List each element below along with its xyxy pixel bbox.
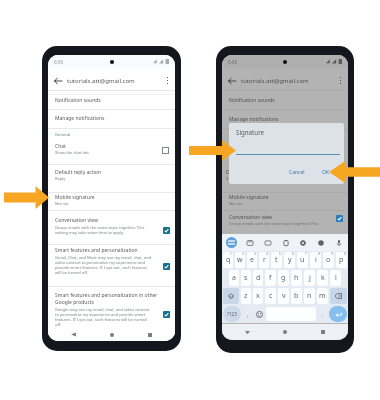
button[interactable]: h (291, 270, 302, 286)
button[interactable]: Default reply action (48, 169, 175, 186)
staticText: video content to personalize my experien… (55, 260, 145, 265)
staticText: u (300, 255, 305, 265)
button[interactable]: GIF (262, 237, 273, 248)
button[interactable]: ?123 (223, 306, 241, 322)
button[interactable]: Settings (297, 237, 308, 248)
button[interactable]: Smart features and personalization in ot… (48, 292, 175, 336)
staticText: s (244, 273, 248, 283)
button[interactable]: Comma (243, 305, 252, 323)
staticText: Smart features and personalization (55, 247, 138, 254)
button[interactable]: s (241, 270, 251, 286)
button[interactable]: Period (318, 305, 327, 323)
button[interactable]: Emoji (254, 305, 264, 323)
button[interactable]: 1 (223, 252, 233, 268)
button[interactable]: Recent apps (310, 324, 336, 340)
staticText: tutorials.att@gmail.com (241, 77, 309, 85)
button[interactable]: k (317, 270, 328, 286)
button[interactable]: x (253, 288, 263, 304)
button[interactable]: b (291, 288, 302, 304)
button[interactable]: l (330, 270, 341, 286)
staticText: 7 (305, 252, 307, 256)
button[interactable]: Back (234, 324, 260, 340)
button[interactable]: Enter (329, 306, 347, 322)
button[interactable]: f (265, 270, 276, 286)
staticText: Show the chat tab (55, 150, 89, 155)
staticText: Manage notifications (55, 115, 105, 122)
staticText: tutorials.att@gmail.com (67, 77, 135, 85)
button[interactable]: Stickers (244, 237, 255, 248)
button[interactable]: Voice input (333, 237, 344, 248)
button[interactable]: 4 (259, 252, 269, 268)
button[interactable]: j (304, 270, 315, 286)
button[interactable]: Navigate up (48, 68, 67, 93)
button[interactable]: Manage notifications (48, 109, 175, 127)
button[interactable]: Shift (223, 288, 239, 304)
button[interactable]: 2 (235, 252, 245, 268)
staticText: x (256, 291, 260, 301)
staticText: g (281, 273, 286, 283)
staticText: Smart features and personalization in ot… (55, 292, 158, 306)
button[interactable]: Clipboard (280, 237, 291, 248)
button[interactable]: 8 (310, 252, 321, 268)
button[interactable]: Backspace (330, 288, 347, 304)
staticText: Reply (226, 176, 237, 181)
button[interactable]: Conversation view (222, 214, 348, 231)
button[interactable]: Notification sounds (48, 91, 175, 109)
staticText: Mobile signature (229, 194, 269, 201)
button[interactable]: 0 (336, 252, 347, 268)
button[interactable]: c (265, 288, 276, 304)
button[interactable]: 7 (297, 252, 308, 268)
staticText: Notification sounds (229, 97, 275, 104)
staticText: w (237, 255, 243, 265)
button[interactable]: d (253, 270, 263, 286)
staticText: will be turned off. (55, 270, 88, 275)
button[interactable]: 6 (284, 252, 295, 268)
staticText: h (294, 273, 299, 283)
button[interactable]: 9 (323, 252, 334, 268)
staticText: t (275, 255, 278, 265)
staticText: e (250, 255, 254, 265)
button[interactable]: a (229, 270, 239, 286)
button[interactable]: Mobile signature (222, 194, 348, 211)
button[interactable]: Home (272, 324, 298, 340)
button[interactable]: Notification sounds (222, 91, 348, 109)
staticText: General (55, 132, 71, 138)
button[interactable]: Mobile signature (48, 194, 175, 211)
button[interactable]: Home (99, 328, 125, 341)
button[interactable]: Themes (315, 237, 326, 248)
button[interactable]: v (278, 288, 289, 304)
button[interactable]: Manage notifications (222, 110, 348, 128)
button[interactable]: m (317, 288, 328, 304)
button[interactable]: Chat (48, 142, 175, 162)
staticText: 6:36 (54, 59, 64, 65)
staticText: d (256, 273, 261, 283)
button[interactable]: More options (332, 68, 348, 93)
staticText: a (232, 273, 236, 283)
button[interactable]: 3 (247, 252, 257, 268)
button[interactable]: Smart features and personalization (48, 247, 175, 286)
staticText: Default reply action (55, 169, 101, 176)
button[interactable]: Conversation view (48, 217, 175, 244)
staticText: f (269, 273, 272, 283)
button[interactable]: Recent apps (137, 328, 163, 341)
button[interactable]: n (304, 288, 315, 304)
staticText: 6:36 (228, 59, 238, 65)
button[interactable]: OK (319, 167, 333, 178)
button[interactable]: Cancel (286, 167, 308, 178)
button[interactable]: Google search (226, 237, 237, 248)
staticText: m (319, 291, 326, 301)
button[interactable]: z (241, 288, 251, 304)
button[interactable]: Back (60, 328, 86, 341)
staticText: 8 (318, 252, 320, 256)
staticText: ?123 (227, 311, 237, 317)
staticText: 4 (266, 252, 268, 256)
button[interactable]: 5 (271, 252, 282, 268)
staticText: setting may take some time to apply. (55, 230, 125, 235)
button[interactable]: g (278, 270, 289, 286)
staticText: o (326, 255, 331, 265)
button[interactable]: Navigate up (222, 68, 241, 93)
button[interactable]: More options (159, 68, 175, 93)
staticText: Mobile signature (55, 194, 95, 201)
staticText: q (226, 255, 231, 265)
